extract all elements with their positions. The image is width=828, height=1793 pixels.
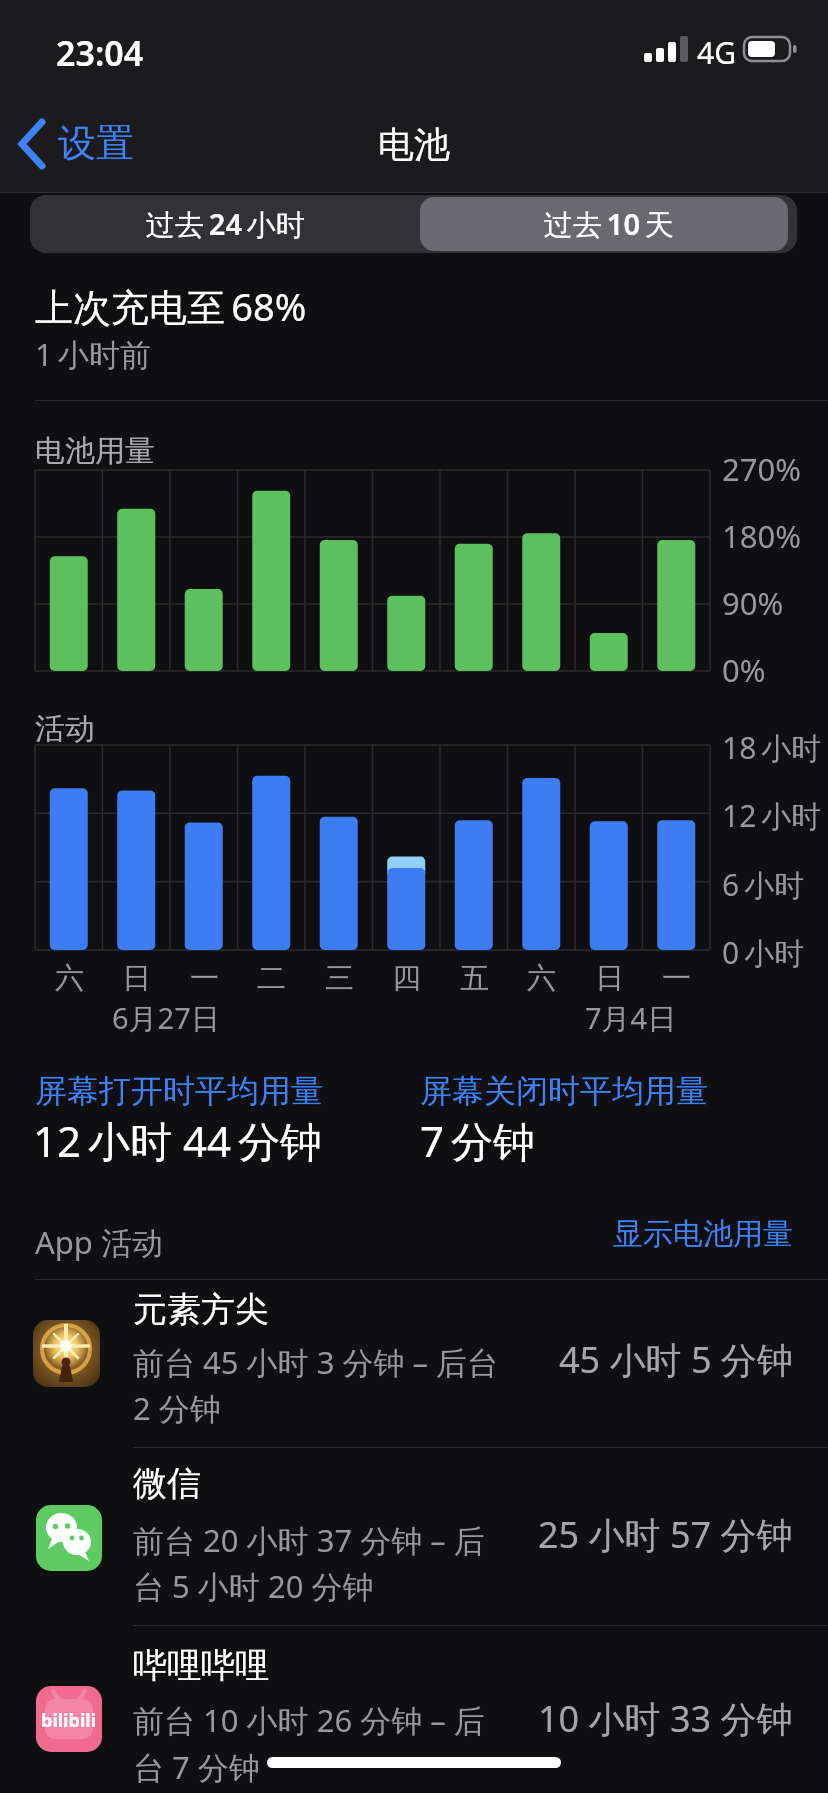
button[interactable]: 过去 24 小时 [30, 195, 420, 253]
staticText: 日 [595, 960, 624, 997]
staticText: 12 小时 44 分钟 [33, 1112, 322, 1169]
staticText: 一 [662, 960, 691, 997]
button[interactable]: 元素方尖 [0, 1280, 828, 1447]
staticText: 台 7 分钟 [133, 1746, 260, 1788]
staticText: 屏幕打开时平均用量 [35, 1071, 323, 1111]
staticText: 哔哩哔哩 [133, 1644, 269, 1687]
staticText: 0 小时 [722, 932, 805, 973]
staticText: 12 小时 [722, 795, 822, 836]
staticText: 六 [55, 960, 84, 997]
button[interactable]: bilibili [0, 1626, 828, 1793]
staticText: 25 小时 57 分钟 [538, 1510, 793, 1559]
staticText: 三 [325, 960, 354, 997]
staticText: 前台 45 小时 3 分钟 – 后台 [133, 1341, 499, 1383]
staticText: 四 [392, 960, 421, 997]
staticText: 显示电池用量 [613, 1215, 793, 1253]
staticText: 7 分钟 [420, 1112, 535, 1169]
staticText: 微信 [133, 1462, 201, 1505]
staticText: 前台 10 小时 26 分钟 – 后 [133, 1699, 485, 1741]
staticText: 设置 [58, 119, 134, 167]
staticText: 过去 24 小时 [146, 204, 305, 244]
staticText: 二 [257, 960, 286, 997]
button[interactable]: 微信 [0, 1448, 828, 1625]
staticText: 90% [722, 582, 784, 624]
staticText: 6月27日 [112, 998, 220, 1038]
staticText: 元素方尖 [133, 1288, 269, 1331]
staticText: 电池 [378, 122, 450, 167]
staticText: 1 小时前 [35, 333, 151, 375]
staticText: 日 [122, 960, 151, 997]
staticText: 23:04 [56, 30, 144, 76]
staticText: bilibili [41, 1708, 97, 1733]
staticText: 7月4日 [585, 998, 677, 1038]
staticText: 屏幕关闭时平均用量 [420, 1071, 708, 1111]
staticText: 一 [190, 960, 219, 997]
staticText: 180% [722, 515, 801, 557]
staticText: 六 [527, 960, 556, 997]
staticText: 4G [697, 32, 736, 73]
staticText: 45 小时 5 分钟 [559, 1335, 793, 1384]
staticText: 五 [460, 960, 489, 997]
staticText: 6 小时 [722, 864, 805, 905]
staticText: 前台 20 小时 37 分钟 – 后 [133, 1519, 485, 1561]
button[interactable]: 过去 10 天 [420, 195, 797, 253]
staticText: 2 分钟 [133, 1387, 221, 1429]
staticText: 上次充电至 68% [35, 280, 307, 332]
staticText: 18 小时 [722, 727, 822, 768]
button[interactable]: 设置 [10, 112, 190, 182]
staticText: 电池用量 [35, 432, 155, 470]
staticText: 台 5 小时 20 分钟 [133, 1565, 374, 1607]
staticText: 过去 10 天 [544, 204, 674, 244]
staticText: 10 小时 33 分钟 [538, 1694, 793, 1743]
staticText: App 活动 [35, 1221, 163, 1263]
staticText: 活动 [35, 710, 95, 748]
staticText: 270% [722, 448, 801, 490]
button[interactable]: 显示电池用量 [560, 1215, 800, 1259]
staticText: 0% [722, 649, 766, 691]
